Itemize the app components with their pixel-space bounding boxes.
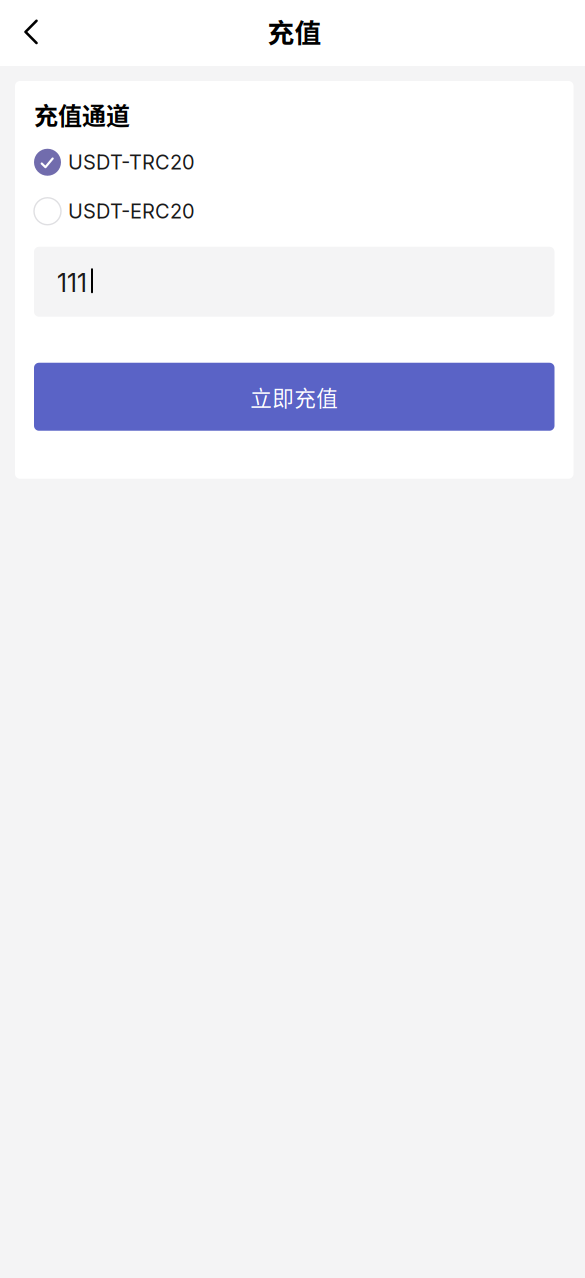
button[interactable]: 立即充值 bbox=[34, 363, 554, 431]
staticText: 111 bbox=[57, 267, 87, 298]
staticText: 充值 bbox=[267, 12, 321, 50]
button[interactable]: Recharge amount bbox=[34, 247, 554, 317]
button[interactable]: USDT-TRC20 bbox=[34, 149, 554, 176]
staticText: USDT-TRC20 bbox=[68, 150, 195, 174]
staticText: 立即充值 bbox=[250, 381, 338, 412]
staticText: 充值通道 bbox=[34, 97, 130, 132]
button[interactable]: Back bbox=[10, 10, 54, 54]
button[interactable]: USDT-ERC20 bbox=[34, 198, 554, 225]
staticText: USDT-ERC20 bbox=[68, 199, 195, 223]
